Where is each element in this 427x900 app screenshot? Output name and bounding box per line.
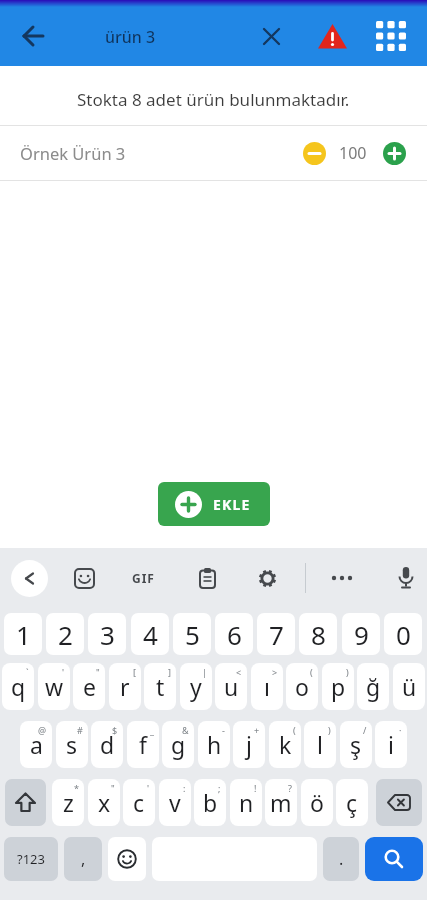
- button[interactable]: d: [91, 721, 123, 768]
- button[interactable]: h: [198, 721, 230, 768]
- staticText: :: [183, 782, 186, 794]
- button[interactable]: q: [2, 663, 34, 710]
- button[interactable]: [252, 17, 290, 55]
- staticText: a: [30, 729, 43, 760]
- button[interactable]: Örnek Ürün 3: [0, 126, 427, 180]
- button[interactable]: 7: [257, 613, 295, 655]
- button[interactable]: [313, 17, 351, 55]
- button[interactable]: e: [73, 663, 105, 710]
- button[interactable]: g: [162, 721, 194, 768]
- staticText: |: [202, 666, 207, 678]
- staticText: ': [147, 782, 150, 794]
- button[interactable]: v: [159, 779, 191, 826]
- button[interactable]: .: [323, 837, 359, 881]
- staticText: /: [363, 724, 367, 736]
- button[interactable]: [108, 837, 146, 881]
- staticText: ü: [402, 671, 417, 702]
- button[interactable]: [365, 837, 423, 881]
- button[interactable]: ?123: [4, 837, 58, 881]
- staticText: ş: [350, 729, 362, 760]
- button[interactable]: 2: [46, 613, 84, 655]
- button[interactable]: b: [194, 779, 226, 826]
- button[interactable]: 6: [215, 613, 253, 655]
- button[interactable]: w: [38, 663, 70, 710]
- button[interactable]: k: [269, 721, 301, 768]
- button[interactable]: y: [180, 663, 212, 710]
- button[interactable]: j: [233, 721, 265, 768]
- staticText: ğ: [366, 671, 381, 702]
- button[interactable]: [376, 779, 422, 826]
- button[interactable]: z: [52, 779, 84, 826]
- staticText: 0: [396, 617, 411, 652]
- staticText: EKLE: [213, 495, 251, 514]
- button[interactable]: ş: [340, 721, 372, 768]
- staticText: 100: [339, 142, 367, 164]
- button[interactable]: [324, 560, 360, 596]
- staticText: !: [254, 782, 257, 794]
- staticText: f: [139, 729, 147, 760]
- button[interactable]: [303, 142, 326, 165]
- staticText: ·: [399, 724, 402, 736]
- button[interactable]: EKLE: [158, 482, 270, 526]
- button[interactable]: 5: [173, 613, 211, 655]
- staticText: p: [331, 671, 346, 702]
- button[interactable]: [388, 560, 424, 596]
- staticText: x: [98, 787, 111, 818]
- button[interactable]: 0: [384, 613, 422, 655]
- button[interactable]: [66, 560, 102, 596]
- button[interactable]: u: [215, 663, 247, 710]
- staticText: [: [133, 666, 136, 678]
- button[interactable]: [383, 142, 406, 165]
- button[interactable]: s: [56, 721, 88, 768]
- staticText: y: [190, 671, 202, 702]
- button[interactable]: [189, 560, 225, 596]
- button[interactable]: ö: [301, 779, 333, 826]
- button[interactable]: t: [144, 663, 176, 710]
- staticText: ]: [168, 666, 171, 678]
- staticText: 3: [100, 617, 115, 652]
- button[interactable]: [11, 560, 48, 597]
- button[interactable]: ğ: [357, 663, 389, 710]
- staticText: ": [96, 666, 100, 678]
- button[interactable]: p: [322, 663, 354, 710]
- button[interactable]: [249, 560, 285, 596]
- button[interactable]: [5, 779, 46, 826]
- button[interactable]: c: [123, 779, 155, 826]
- staticText: m: [270, 787, 292, 818]
- button[interactable]: ç: [336, 779, 368, 826]
- button[interactable]: 1: [4, 613, 42, 655]
- button[interactable]: GIF: [122, 560, 164, 596]
- button[interactable]: m: [265, 779, 297, 826]
- staticText: n: [239, 787, 254, 818]
- button[interactable]: i: [375, 721, 407, 768]
- button[interactable]: [372, 17, 410, 55]
- staticText: *: [74, 782, 79, 794]
- staticText: ürün 3: [105, 26, 156, 48]
- staticText: b: [203, 787, 218, 818]
- button[interactable]: 4: [131, 613, 169, 655]
- staticText: k: [279, 729, 292, 760]
- staticText: ö: [310, 787, 324, 818]
- button[interactable]: f: [127, 721, 159, 768]
- button[interactable]: o: [286, 663, 318, 710]
- button[interactable]: 9: [342, 613, 380, 655]
- button[interactable]: n: [230, 779, 262, 826]
- button[interactable]: r: [109, 663, 141, 710]
- staticText: 4: [143, 617, 158, 652]
- button[interactable]: ü: [393, 663, 425, 710]
- button[interactable]: ı: [251, 663, 283, 710]
- staticText: s: [66, 729, 78, 760]
- staticText: ): [346, 666, 349, 678]
- staticText: ;: [218, 782, 221, 794]
- button[interactable]: ,: [64, 837, 102, 881]
- button[interactable]: x: [88, 779, 120, 826]
- staticText: >: [272, 666, 278, 678]
- staticText: d: [100, 729, 115, 760]
- staticText: ': [62, 666, 65, 678]
- button[interactable]: [14, 17, 52, 55]
- button[interactable]: 8: [299, 613, 337, 655]
- button[interactable]: 3: [88, 613, 126, 655]
- button[interactable]: l: [304, 721, 336, 768]
- button[interactable]: a: [20, 721, 52, 768]
